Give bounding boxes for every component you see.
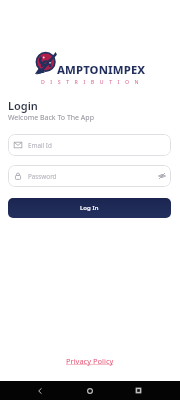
staticText: AMPTONIMPEX	[57, 62, 146, 77]
button[interactable]: Back	[30, 381, 50, 400]
staticText: Log In	[80, 204, 99, 212]
button[interactable]: Home	[80, 381, 100, 400]
button[interactable]: Recents	[128, 381, 148, 400]
staticText: Password	[28, 172, 57, 181]
button[interactable]: Show password	[158, 172, 166, 180]
staticText: Welcome Back To The App	[8, 113, 94, 123]
staticText: Email Id	[28, 141, 52, 150]
staticText: Login	[8, 98, 38, 113]
staticText: Privacy Policy	[66, 356, 114, 366]
button[interactable]: Privacy Policy	[63, 354, 117, 368]
staticText: DISTRIBUTION	[41, 78, 145, 85]
button[interactable]: Log In	[8, 198, 171, 218]
button[interactable]: Password	[8, 165, 171, 187]
button[interactable]: Email Id	[8, 134, 171, 156]
